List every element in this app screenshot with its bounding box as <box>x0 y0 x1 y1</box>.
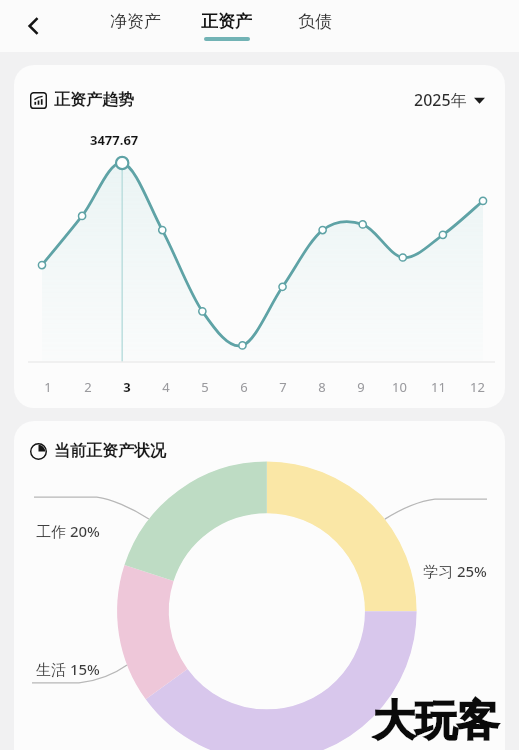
staticText: 学习 25% <box>423 561 487 581</box>
staticText: 3 <box>123 378 131 396</box>
staticText: 3477.67 <box>90 131 139 149</box>
staticText: 大玩客 <box>373 695 499 748</box>
staticText: 正资产趋势 <box>54 90 134 110</box>
button[interactable]: Back <box>14 6 54 46</box>
staticText: 1 <box>44 378 52 396</box>
staticText: 8 <box>318 378 326 396</box>
staticText: 6 <box>240 378 248 396</box>
staticText: 10 <box>392 378 407 396</box>
button[interactable]: 正资产 <box>199 9 254 43</box>
staticText: 2 <box>84 378 92 396</box>
staticText: 净资产 <box>110 11 161 32</box>
button[interactable]: 净资产 <box>108 9 163 43</box>
staticText: 5 <box>201 378 209 396</box>
staticText: 正资产 <box>201 11 252 32</box>
staticText: 7 <box>279 378 287 396</box>
staticText: 生活 15% <box>36 659 100 679</box>
staticText: 工作 20% <box>36 521 100 541</box>
staticText: 12 <box>470 378 485 396</box>
button[interactable]: 负债 <box>290 9 340 43</box>
staticText: 2025年 <box>414 89 467 111</box>
staticText: 负债 <box>298 11 332 32</box>
button[interactable]: 2025年 <box>410 85 489 115</box>
staticText: 9 <box>357 378 365 396</box>
staticText: 4 <box>162 378 170 396</box>
staticText: 11 <box>431 378 446 396</box>
staticText: 当前正资产状况 <box>54 441 166 461</box>
